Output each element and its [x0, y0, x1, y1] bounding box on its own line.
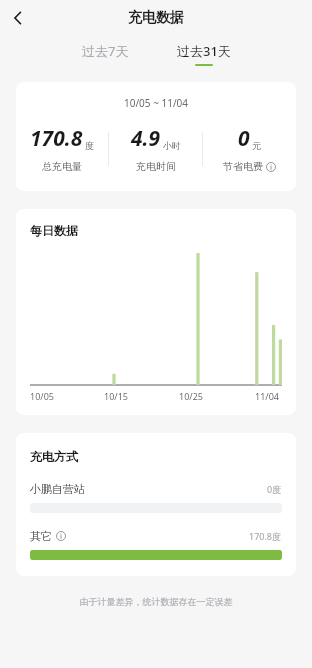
button[interactable]: 0: [203, 124, 296, 173]
button[interactable]: 小鹏自营站: [30, 482, 282, 513]
staticText: 170.8: [30, 124, 83, 153]
staticText: 每日数据: [30, 223, 78, 238]
button[interactable]: 4.9: [109, 124, 202, 173]
staticText: 0度: [267, 483, 282, 495]
staticText: 度: [85, 140, 94, 151]
button[interactable]: Back: [0, 0, 36, 36]
staticText: 元: [252, 140, 261, 151]
staticText: 小时: [163, 140, 181, 151]
staticText: 10/05: [30, 390, 54, 402]
staticText: 4.9: [131, 124, 161, 153]
staticText: 充电数据: [128, 9, 184, 27]
staticText: 170.8度: [249, 530, 282, 542]
staticText: 过去7天: [82, 42, 129, 60]
staticText: 10/25: [179, 390, 203, 402]
staticText: 其它: [30, 529, 52, 543]
button[interactable]: 170.8: [16, 124, 108, 173]
staticText: 小鹏自营站: [30, 482, 85, 496]
staticText: 11/04: [255, 390, 279, 402]
other: Info: [56, 531, 66, 541]
staticText: 充电方式: [30, 449, 78, 464]
staticText: 充电时间: [136, 160, 176, 173]
staticText: 10/05 ~ 11/04: [16, 96, 296, 110]
staticText: 节省电费: [223, 160, 263, 173]
button[interactable]: 过去31天: [171, 40, 237, 68]
staticText: 过去31天: [177, 42, 231, 60]
button[interactable]: 其它: [30, 529, 282, 560]
staticText: 总充电量: [42, 160, 82, 173]
button[interactable]: 过去7天: [76, 40, 135, 68]
staticText: 10/15: [104, 390, 128, 402]
other: Info: [266, 162, 276, 172]
staticText: 0: [238, 124, 250, 153]
staticText: 由于计量差异，统计数据存在一定误差: [0, 596, 312, 607]
